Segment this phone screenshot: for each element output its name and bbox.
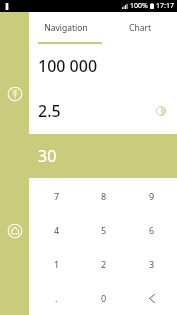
button[interactable]: 2 [80, 247, 128, 281]
staticText: 30 [38, 145, 57, 167]
button[interactable]: Navigation [29, 12, 103, 44]
button[interactable]: 4 [33, 213, 80, 247]
staticText: 100% [130, 1, 148, 11]
staticText: Chart [129, 22, 151, 34]
button[interactable]: 1 [33, 247, 80, 281]
staticText: 9 [149, 190, 155, 202]
button[interactable]: 2.5 [29, 88, 177, 134]
staticText: 100 000 [38, 55, 98, 77]
button[interactable]: Home [7, 223, 23, 239]
button[interactable]: Backspace [128, 281, 176, 315]
staticText: 3 [149, 258, 155, 270]
staticText: . [55, 292, 58, 304]
staticText: 8 [101, 190, 107, 202]
staticText: Navigation [44, 22, 88, 34]
button[interactable]: 100 000 [29, 44, 177, 88]
button[interactable]: Plant [7, 86, 23, 102]
staticText: 2 [101, 258, 107, 270]
staticText: 2.5 [38, 100, 61, 122]
button[interactable]: Chart [103, 12, 177, 44]
button[interactable]: 0 [80, 281, 128, 315]
staticText: 4 [54, 224, 60, 236]
button[interactable]: 6 [128, 213, 176, 247]
button[interactable]: 8 [80, 178, 128, 213]
button[interactable]: 9 [128, 178, 176, 213]
staticText: 6 [149, 224, 155, 236]
button[interactable]: 7 [33, 178, 80, 213]
button[interactable]: 30 [29, 134, 177, 178]
staticText: 1 [54, 258, 60, 270]
staticText: 0 [101, 292, 107, 304]
staticText: 7 [54, 190, 60, 202]
button[interactable]: 3 [128, 247, 176, 281]
staticText: 17:17 [156, 1, 174, 11]
button[interactable]: Contrast [155, 105, 167, 117]
staticText: 5 [101, 224, 107, 236]
button[interactable]: 5 [80, 213, 128, 247]
